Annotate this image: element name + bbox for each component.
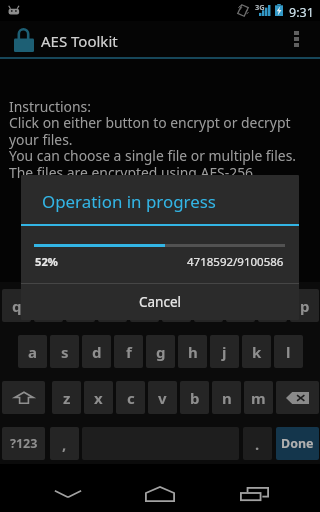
button[interactable]: z	[52, 381, 81, 414]
button[interactable]: l	[274, 335, 303, 368]
button[interactable]: s	[50, 335, 79, 368]
staticText: Cancel	[139, 293, 182, 311]
staticText: c	[127, 388, 135, 408]
button[interactable]: Backspace	[276, 381, 319, 414]
button[interactable]: j	[210, 335, 239, 368]
button[interactable]: p	[290, 289, 319, 322]
staticText: 4718592/9100586	[187, 254, 284, 270]
staticText: v	[158, 388, 167, 408]
button[interactable]: a	[18, 335, 47, 368]
button[interactable]: g	[146, 335, 175, 368]
button[interactable]: n	[212, 381, 241, 414]
button[interactable]: Shift	[2, 381, 45, 414]
staticText: ,	[62, 434, 67, 454]
staticText: ?123	[10, 435, 38, 452]
button[interactable]: .	[243, 427, 272, 460]
staticText: s	[61, 342, 69, 362]
button[interactable]: y	[162, 289, 191, 322]
staticText: 3G	[255, 2, 265, 12]
staticText: n	[222, 388, 232, 408]
button[interactable]: Done	[276, 427, 319, 460]
button[interactable]: m	[244, 381, 273, 414]
staticText: your files.	[9, 130, 73, 149]
staticText: g	[156, 342, 166, 362]
staticText: x	[94, 388, 103, 408]
staticText: Operation in progress	[42, 190, 216, 213]
staticText: 9:31	[289, 4, 314, 21]
button[interactable]: v	[148, 381, 177, 414]
button[interactable]: More options	[282, 21, 320, 57]
button[interactable]: q	[2, 289, 31, 322]
staticText: 52%	[35, 254, 58, 269]
button[interactable]: d	[82, 335, 111, 368]
staticText: y	[172, 296, 181, 316]
button[interactable]: x	[84, 381, 113, 414]
staticText: t	[141, 296, 148, 316]
staticText: z	[63, 388, 71, 408]
staticText: q	[12, 296, 22, 316]
button[interactable]: c	[116, 381, 145, 414]
staticText: k	[252, 342, 262, 362]
staticText: l	[286, 342, 291, 362]
staticText: a	[28, 342, 37, 362]
staticText: AES Toolkit	[41, 31, 118, 51]
button[interactable]: ,	[50, 427, 79, 460]
staticText: j	[222, 342, 227, 362]
staticText: Click on either button to encrypt or dec…	[9, 113, 291, 132]
button[interactable]: ?123	[2, 427, 45, 460]
staticText: m	[251, 388, 266, 408]
button[interactable]: t	[130, 289, 159, 322]
staticText: h	[188, 342, 198, 362]
button[interactable]: Home	[130, 474, 190, 512]
button[interactable]: f	[114, 335, 143, 368]
staticText: p	[300, 296, 310, 316]
button[interactable]: b	[180, 381, 209, 414]
button[interactable]: Recent apps	[224, 474, 284, 512]
staticText: You can choose a single file or multiple…	[9, 146, 297, 165]
staticText: .	[255, 434, 260, 454]
staticText: Done	[281, 435, 314, 452]
staticText: b	[190, 388, 200, 408]
staticText: d	[92, 342, 102, 362]
staticText: Instructions:	[9, 97, 91, 116]
staticText: The files are encrypted using AES-256.	[9, 163, 257, 182]
button[interactable]: k	[242, 335, 271, 368]
button[interactable]: h	[178, 335, 207, 368]
button[interactable]: Back	[38, 474, 98, 512]
staticText: f	[126, 342, 132, 362]
button[interactable]: Cancel	[21, 284, 299, 320]
